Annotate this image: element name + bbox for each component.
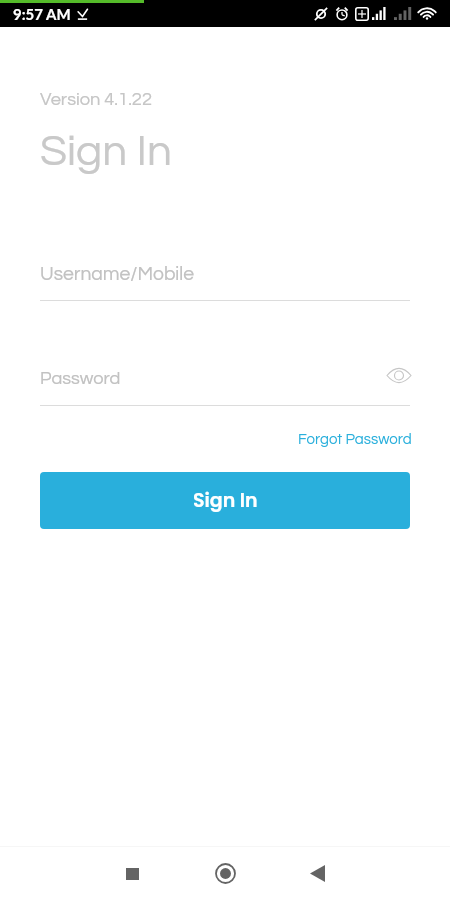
staticText: Version 4.1.22 (40, 90, 152, 109)
button[interactable]: Username/Mobile (40, 262, 410, 301)
staticText: Forgot Password (298, 432, 412, 447)
staticText: Sign In (193, 487, 258, 514)
staticText: Username/Mobile (40, 264, 195, 284)
staticText: Password (40, 369, 121, 388)
button[interactable]: Home (187, 847, 263, 900)
staticText: Sign In (40, 129, 172, 174)
button[interactable]: Show password (383, 360, 414, 391)
button[interactable]: Password (40, 366, 410, 406)
button[interactable]: Recent apps (94, 847, 170, 900)
button[interactable]: Forgot Password (252, 428, 412, 450)
button[interactable]: Sign In (40, 472, 410, 529)
staticText: 9:57 AM (13, 5, 71, 23)
button[interactable]: Back (279, 847, 355, 900)
